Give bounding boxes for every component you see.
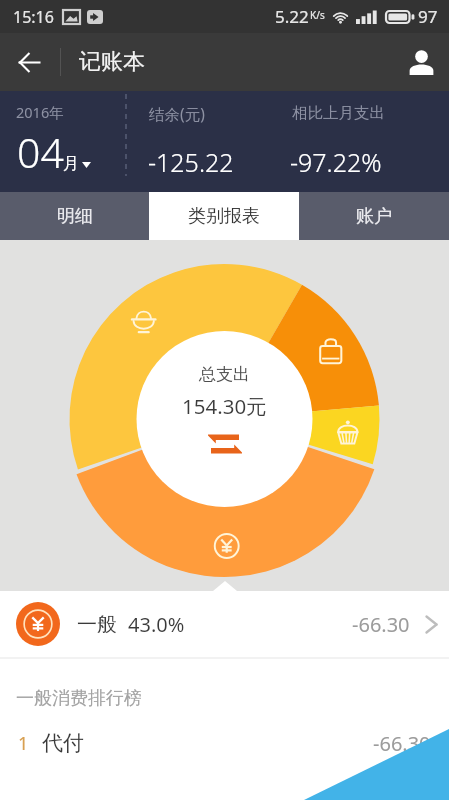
- button[interactable]: Switch chart type: [208, 434, 242, 454]
- staticText: 一般消费排行榜: [16, 687, 142, 710]
- staticText: 记账本: [79, 48, 145, 76]
- staticText: -125.22: [148, 145, 234, 179]
- staticText: 5.22: [275, 5, 309, 28]
- staticText: -97.22%: [290, 145, 382, 179]
- button[interactable]: Back: [0, 33, 58, 91]
- button[interactable]: 一般: [0, 591, 449, 657]
- staticText: 月: [63, 154, 79, 174]
- staticText: K/s: [310, 8, 325, 22]
- button[interactable]: 类别报表: [149, 192, 299, 240]
- staticText: 154.30元: [182, 392, 267, 420]
- staticText: 总支出: [199, 364, 250, 385]
- staticText: 04: [17, 124, 64, 180]
- staticText: 结余(元): [149, 103, 205, 124]
- button[interactable]: 账户: [299, 192, 449, 240]
- staticText: -66.30: [352, 611, 410, 638]
- staticText: 43.0%: [128, 611, 185, 638]
- staticText: 15:16: [13, 6, 54, 28]
- button[interactable]: Profile: [393, 34, 449, 90]
- staticText: 账户: [356, 205, 392, 228]
- staticText: -66.30: [373, 730, 431, 757]
- staticText: 代付: [42, 730, 84, 756]
- staticText: 明细: [57, 205, 93, 228]
- staticText: 97: [418, 5, 438, 28]
- staticText: 2016年: [16, 102, 64, 122]
- staticText: 相比上月支出: [292, 103, 385, 123]
- button[interactable]: 明细: [0, 192, 149, 240]
- staticText: 类别报表: [188, 205, 260, 228]
- staticText: 一般: [77, 612, 117, 637]
- button[interactable]: 1: [0, 727, 449, 759]
- staticText: 1: [18, 731, 29, 756]
